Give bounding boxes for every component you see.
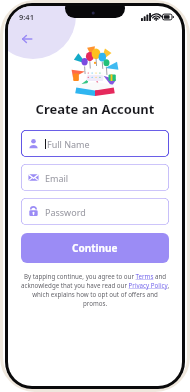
staticText: Password [45,206,86,218]
staticText: By tapping continue, you agree to our Te… [20,272,170,308]
button[interactable]: Email [21,164,169,191]
button[interactable]: Password [21,198,169,225]
button[interactable]: Back [16,28,38,50]
staticText: Continue [72,241,118,255]
staticText: Email [45,172,69,184]
button[interactable]: Continue [21,233,169,263]
staticText: 9:41 [19,12,34,22]
button[interactable]: Full Name [21,130,169,157]
staticText: Create an Account [8,100,182,118]
staticText: Full Name [47,138,90,150]
